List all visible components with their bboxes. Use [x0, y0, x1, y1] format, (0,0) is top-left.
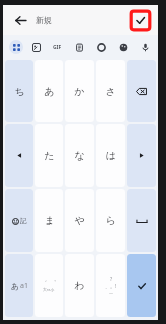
button[interactable]: あ: [35, 60, 63, 122]
staticText: 大⇔小: [43, 287, 55, 292]
button[interactable]: Dakuten: [35, 254, 63, 317]
button[interactable]: Emoji and symbols: [5, 189, 33, 252]
button[interactable]: Themes: [112, 37, 134, 57]
button[interactable]: Back: [9, 9, 31, 31]
button[interactable]: Punctuation: [96, 254, 125, 317]
button[interactable]: ち: [5, 60, 33, 122]
button[interactable]: Voice input: [134, 37, 156, 57]
button[interactable]: Save: [130, 10, 151, 31]
staticText: さ: [105, 85, 116, 98]
button[interactable]: や: [65, 189, 94, 252]
button[interactable]: GIF: [47, 37, 68, 57]
staticText: 、。!: [105, 283, 117, 290]
button[interactable]: Stickers: [26, 37, 47, 57]
button[interactable]: Cursor left: [5, 124, 33, 187]
staticText: わ: [74, 279, 85, 292]
staticText: 記: [20, 217, 27, 225]
button[interactable]: Switch input mode: [5, 254, 33, 317]
staticText: GIF: [53, 44, 62, 51]
staticText: 新規: [36, 15, 52, 25]
staticText: あ: [44, 85, 55, 98]
button[interactable]: Settings: [90, 37, 112, 57]
staticText: —: [109, 290, 113, 295]
button[interactable]: は: [96, 124, 125, 187]
button[interactable]: た: [35, 124, 63, 187]
button[interactable]: ら: [96, 189, 125, 252]
staticText: や: [74, 214, 85, 227]
button[interactable]: Clipboard: [68, 37, 90, 57]
button[interactable]: Backspace: [127, 60, 156, 122]
staticText: ち: [14, 85, 25, 98]
button[interactable]: か: [65, 60, 94, 122]
staticText: a1: [20, 281, 28, 291]
staticText: あ: [11, 281, 20, 291]
staticText: か: [74, 85, 85, 98]
staticText: ?: [110, 276, 113, 283]
staticText: ゛ ゜: [41, 279, 57, 287]
staticText: ま: [44, 214, 55, 227]
staticText: は: [105, 149, 116, 162]
button[interactable]: わ: [65, 254, 94, 317]
button[interactable]: Cursor right: [127, 124, 156, 187]
button[interactable]: な: [65, 124, 94, 187]
button[interactable]: Enter: [127, 254, 156, 317]
staticText: た: [44, 149, 55, 162]
button[interactable]: ま: [35, 189, 63, 252]
staticText: ら: [105, 214, 116, 227]
button[interactable]: さ: [96, 60, 125, 122]
button[interactable]: Space: [127, 189, 156, 252]
button[interactable]: Apps: [5, 37, 26, 57]
staticText: な: [74, 149, 85, 162]
